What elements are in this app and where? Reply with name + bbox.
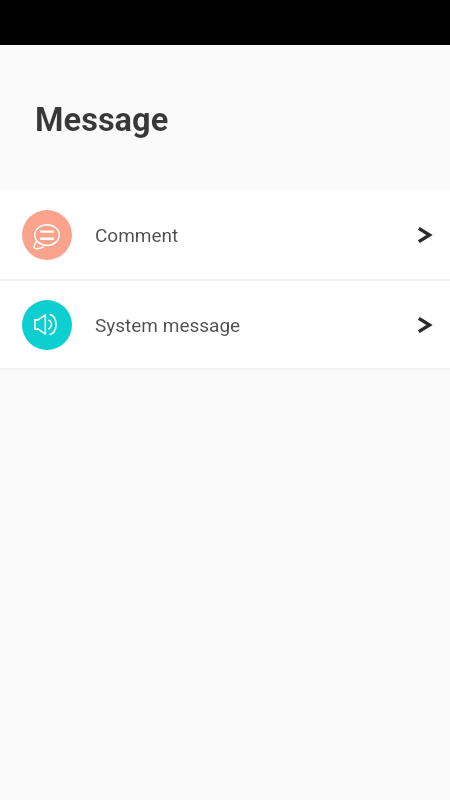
other: Open [418, 228, 430, 242]
staticText: System message [95, 314, 241, 336]
staticText: Comment [95, 224, 179, 246]
other: Open [418, 318, 430, 332]
staticText: Message [35, 101, 169, 139]
button[interactable]: System message [0, 281, 450, 368]
button[interactable]: Comment [0, 190, 450, 279]
